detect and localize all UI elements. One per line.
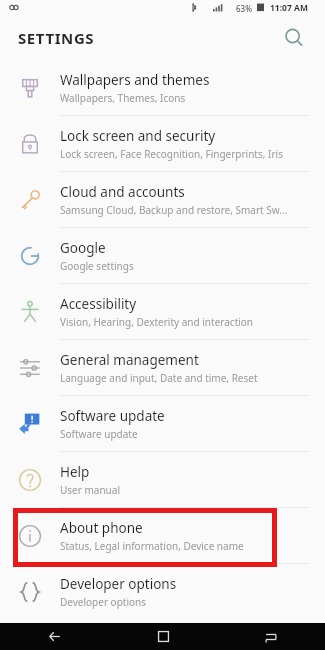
button[interactable]: Accessibility <box>0 284 325 339</box>
button[interactable]: Software update <box>0 396 325 451</box>
staticText: Status, Legal information, Device name <box>60 539 244 553</box>
staticText: Lock screen and security <box>60 127 216 145</box>
button[interactable]: Google <box>0 228 325 283</box>
staticText: Developer options <box>60 575 177 593</box>
staticText: Software update <box>60 407 165 425</box>
staticText: About phone <box>60 519 143 537</box>
button[interactable]: Home <box>109 623 217 650</box>
staticText: General management <box>60 351 199 369</box>
button[interactable]: Help <box>0 452 325 507</box>
button[interactable]: About phone <box>0 508 325 563</box>
staticText: Wallpapers and themes <box>60 71 210 89</box>
staticText: Language and input, Date and time, Reset <box>60 371 258 385</box>
staticText: Accessibility <box>60 295 137 313</box>
staticText: 63% <box>236 3 252 14</box>
staticText: Google <box>60 239 106 257</box>
staticText: Wallpapers, Themes, Icons <box>60 91 186 105</box>
staticText: Help <box>60 463 90 481</box>
button[interactable]: Developer options <box>0 564 325 619</box>
staticText: Google settings <box>60 259 134 273</box>
button[interactable]: Cloud and accounts <box>0 172 325 227</box>
staticText: Lock screen, Face Recognition, Fingerpri… <box>60 147 283 161</box>
staticText: User manual <box>60 483 120 497</box>
button[interactable]: General management <box>0 340 325 395</box>
button[interactable]: Back <box>0 623 109 650</box>
button[interactable]: Lock screen and security <box>0 116 325 171</box>
staticText: Vision, Hearing, Dexterity and interacti… <box>60 315 254 329</box>
staticText: Developer options <box>60 595 147 609</box>
staticText: Samsung Cloud, Backup and restore, Smart… <box>60 203 288 217</box>
button[interactable]: Recents <box>217 623 325 650</box>
staticText: SETTINGS <box>18 28 95 48</box>
button[interactable]: Search <box>277 21 311 55</box>
staticText: Software update <box>60 427 138 441</box>
button[interactable]: Wallpapers and themes <box>0 60 325 115</box>
staticText: Cloud and accounts <box>60 183 185 201</box>
staticText: 11:07 AM <box>270 2 308 14</box>
